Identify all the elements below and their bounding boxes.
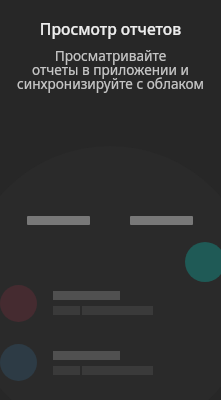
staticText: Просмотр отчетов	[0, 18, 221, 39]
staticText: Просматривайте отчеты в приложении и син…	[0, 46, 221, 93]
